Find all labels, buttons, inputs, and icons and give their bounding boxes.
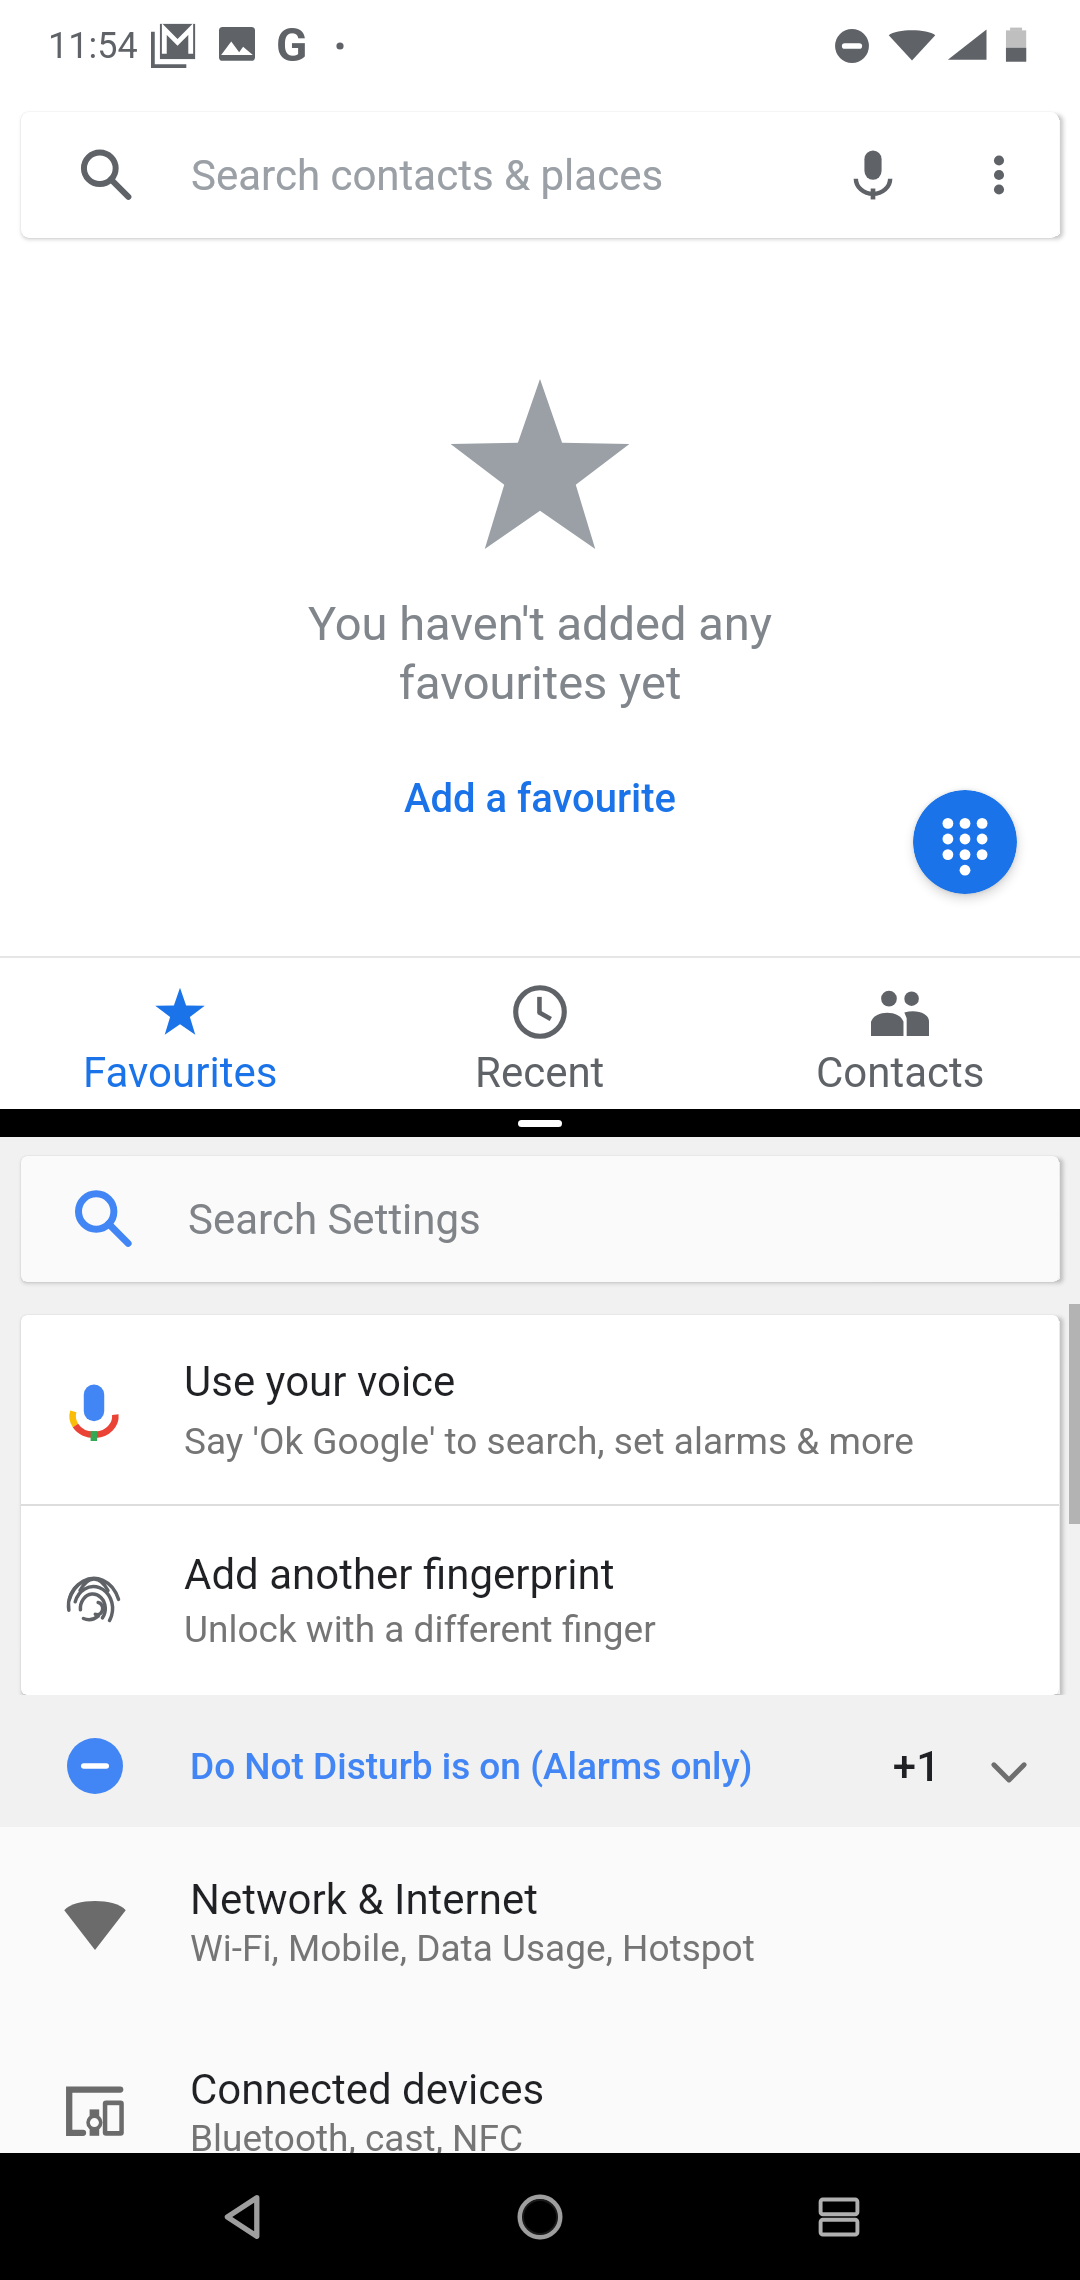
staticText: Contacts — [816, 1048, 985, 1097]
staticText: Use your voice — [184, 1357, 456, 1406]
staticText: Add another fingerprint — [184, 1550, 615, 1599]
staticText: Wi-Fi, Mobile, Data Usage, Hotspot — [190, 1927, 755, 1970]
staticText: Bluetooth, cast, NFC — [190, 2117, 524, 2160]
staticText: +1 — [855, 1742, 940, 1791]
button[interactable]: Search Settings — [21, 1156, 1059, 1282]
button[interactable]: Connected devices — [0, 2017, 1080, 2207]
staticText: Connected devices — [190, 2065, 545, 2114]
button[interactable]: Expand — [976, 1738, 1032, 1794]
button[interactable]: Add another fingerprint — [21, 1506, 1059, 1695]
button[interactable]: Recent — [360, 958, 720, 1111]
button[interactable]: Voice search — [825, 127, 921, 223]
staticText: G — [276, 18, 308, 72]
staticText: Say 'Ok Google' to search, set alarms & … — [184, 1420, 914, 1463]
staticText: Do Not Disturb is on (Alarms only) — [190, 1745, 753, 1788]
staticText: Search Settings — [188, 1195, 481, 1244]
button[interactable]: Contacts — [720, 958, 1080, 1111]
staticText: You haven't added any favourites yet — [308, 596, 772, 710]
button[interactable]: Home — [480, 2153, 600, 2280]
button[interactable]: Do Not Disturb is on (Alarms only) — [0, 1695, 1080, 1827]
button[interactable]: Network & Internet — [0, 1827, 1080, 2017]
button[interactable]: Back — [183, 2153, 303, 2280]
button[interactable]: Dialpad — [913, 790, 1017, 894]
button[interactable]: Search contacts & places — [21, 112, 1059, 238]
staticText: Add a favourite — [404, 775, 677, 822]
button[interactable]: Use your voice — [21, 1315, 1059, 1504]
button[interactable]: Add a favourite — [380, 763, 701, 834]
staticText: Network & Internet — [190, 1875, 539, 1924]
staticText: Unlock with a different finger — [184, 1608, 656, 1651]
button[interactable]: Favourites — [0, 958, 360, 1111]
button[interactable]: More options — [951, 127, 1047, 223]
staticText: Search contacts & places — [191, 151, 664, 200]
staticText: Recent — [475, 1048, 605, 1097]
button[interactable]: Recents — [779, 2153, 899, 2280]
staticText: 11:54 — [48, 25, 138, 67]
staticText: Favourites — [83, 1048, 278, 1097]
